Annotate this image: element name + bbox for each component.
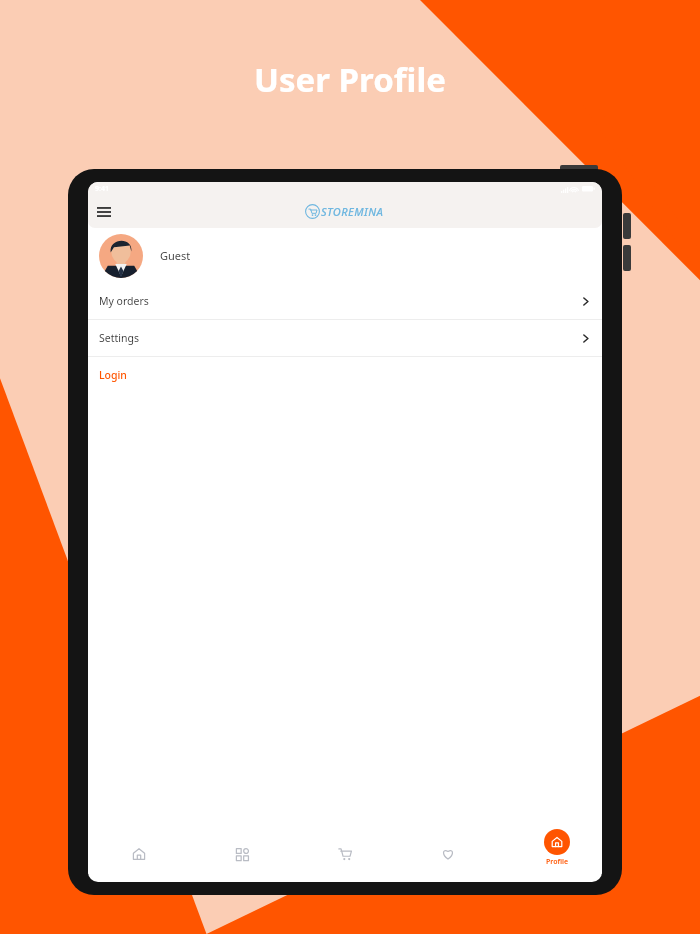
button[interactable]: Login [88, 357, 602, 393]
staticText: My orders [99, 294, 149, 308]
button[interactable]: Wishlist [396, 834, 499, 874]
staticText: Login [99, 368, 127, 382]
staticText: Guest [160, 248, 191, 263]
button[interactable]: Categories [190, 834, 293, 874]
button[interactable]: Home [88, 834, 190, 874]
staticText: Settings [99, 331, 139, 345]
button[interactable]: STOREMINA [305, 204, 384, 219]
button[interactable]: Menu [93, 201, 115, 223]
button[interactable]: Profile [544, 829, 570, 867]
button[interactable]: My orders [88, 283, 602, 319]
staticText: 9:41 [95, 184, 109, 194]
staticText: STOREMINA [321, 204, 384, 219]
staticText: User Profile [0, 57, 700, 102]
button[interactable]: Settings [88, 320, 602, 356]
button[interactable]: Cart [293, 834, 396, 874]
button[interactable]: Guest [88, 228, 602, 283]
staticText: Profile [546, 857, 569, 867]
